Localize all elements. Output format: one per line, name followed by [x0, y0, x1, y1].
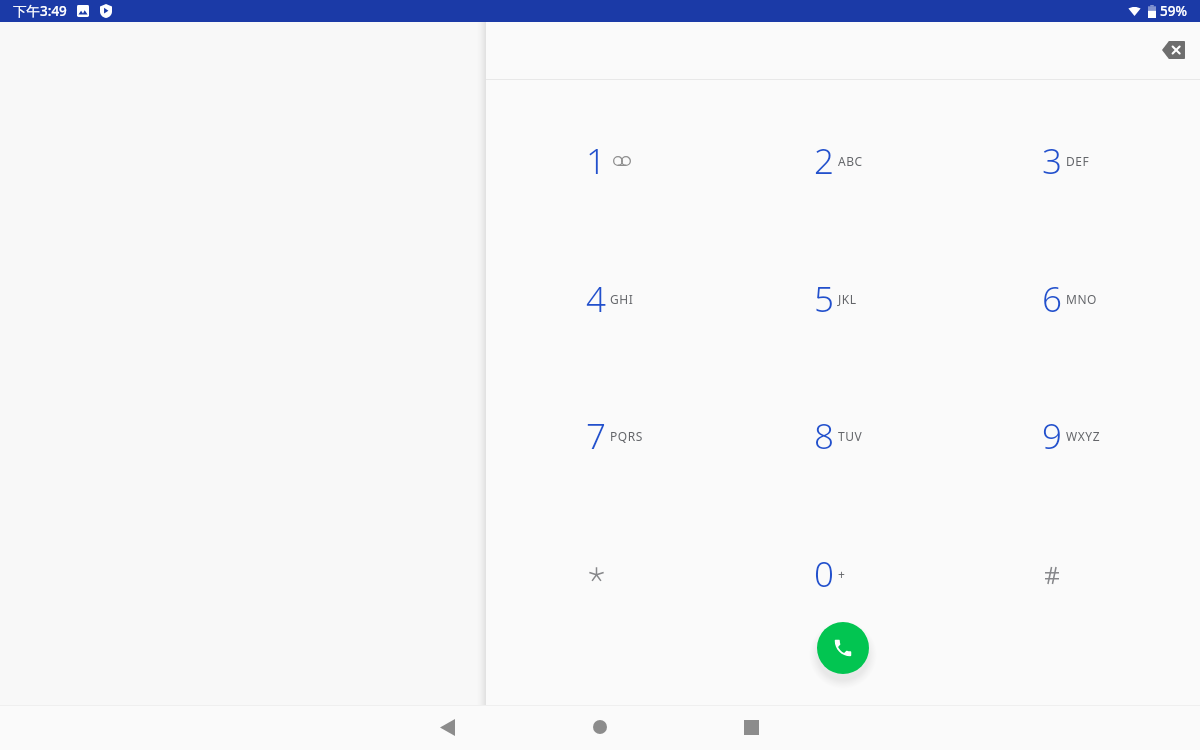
staticText: WXYZ	[1066, 428, 1101, 444]
button[interactable]: 4	[482, 230, 710, 368]
button[interactable]: 8	[710, 367, 938, 505]
button[interactable]: 0	[710, 505, 938, 643]
staticText: 下午3:49	[13, 2, 67, 20]
staticText: ABC	[838, 153, 863, 169]
staticText: 7	[586, 412, 606, 460]
button[interactable]: Recents	[729, 705, 773, 749]
staticText: JKL	[838, 291, 857, 307]
button[interactable]: 3	[938, 92, 1166, 230]
staticText: 2	[814, 137, 834, 185]
button[interactable]: 1	[482, 92, 710, 230]
staticText: 3	[1042, 137, 1062, 185]
button[interactable]: 7	[482, 367, 710, 505]
button[interactable]: Call	[817, 622, 869, 674]
button[interactable]: Back	[425, 705, 469, 749]
staticText: 5	[814, 275, 834, 323]
button[interactable]: 2	[710, 92, 938, 230]
staticText: GHI	[610, 291, 634, 307]
button[interactable]: 9	[938, 367, 1166, 505]
staticText: 6	[1042, 275, 1062, 323]
staticText: 1	[586, 137, 606, 185]
button[interactable]: Pound	[938, 505, 1166, 643]
button[interactable]: Star	[482, 505, 710, 643]
staticText: 59%	[1160, 2, 1187, 20]
button[interactable]: Backspace	[1153, 30, 1193, 70]
button[interactable]: 5	[710, 230, 938, 368]
staticText: 4	[586, 275, 606, 323]
staticText: 9	[1042, 412, 1062, 460]
staticText: 0	[814, 550, 834, 598]
staticText: 8	[814, 412, 834, 460]
staticText: MNO	[1066, 291, 1098, 307]
staticText: DEF	[1066, 153, 1090, 169]
button[interactable]: Home	[578, 705, 622, 749]
button[interactable]: 6	[938, 230, 1166, 368]
staticText: +	[838, 566, 846, 582]
staticText: PQRS	[610, 428, 643, 444]
staticText: TUV	[838, 428, 863, 444]
